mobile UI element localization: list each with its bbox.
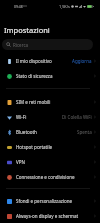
button[interactable]: Connessione e condivisione [0, 169, 100, 184]
staticText: 09:48 [14, 4, 23, 9]
button[interactable]: Always-on display e schermat [0, 208, 100, 223]
button[interactable]: Sfondi e personalizzazione [0, 193, 100, 208]
staticText: Impostazioni [4, 25, 50, 35]
staticText: Ricerca [13, 42, 29, 48]
staticText: Sfondi e personalizzazione [16, 198, 73, 204]
staticText: Always-on display e schermat [16, 213, 79, 219]
staticText: Wi-Fi [16, 114, 27, 120]
button[interactable]: VPN [0, 154, 100, 169]
staticText: Spenta [77, 129, 92, 135]
staticText: Aggiorna [72, 58, 92, 64]
button[interactable]: Ricerca [2, 39, 93, 50]
button[interactable]: Il mio dispositivo [0, 53, 100, 68]
staticText: Bluetooth [16, 129, 37, 135]
staticText: Connessione e condivisione [16, 174, 75, 180]
button[interactable]: Wi-Fi [0, 109, 100, 124]
staticText: Hotspot portatile [16, 144, 53, 150]
staticText: 1,5K/s [59, 4, 70, 9]
staticText: Il mio dispositivo [16, 58, 52, 64]
staticText: VPN [16, 159, 25, 165]
staticText: Stato di sicurezza [16, 73, 53, 79]
staticText: Di Colella WiFi [62, 114, 92, 120]
button[interactable]: Bluetooth [0, 124, 100, 139]
staticText: SIM e reti mobili [16, 99, 51, 105]
button[interactable]: SIM e reti mobili [0, 94, 100, 109]
button[interactable]: Hotspot portatile [0, 139, 100, 154]
button[interactable]: Stato di sicurezza [0, 68, 100, 83]
